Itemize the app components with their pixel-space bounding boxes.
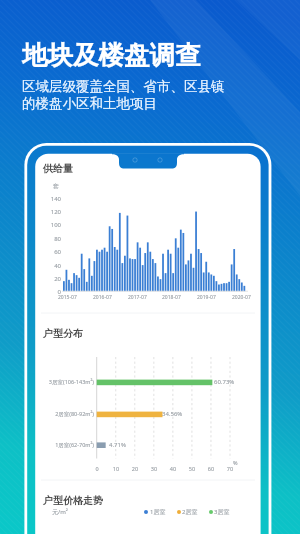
staticText: 140 [43, 195, 61, 534]
staticText: % [233, 459, 238, 466]
staticText: 户型价格走势 [43, 494, 103, 507]
staticText: 地块及楼盘调查 [22, 39, 201, 71]
staticText: 120 [43, 208, 61, 534]
staticText: 套 [53, 182, 59, 190]
staticText: 3居室 [214, 508, 230, 516]
staticText: 20 [126, 465, 144, 534]
staticText: 户型分布 [43, 327, 83, 340]
staticText: 供给量 [43, 162, 73, 175]
button[interactable]: 户型分布图表 [35, 314, 261, 480]
staticText: 2018-07 [162, 294, 181, 301]
staticText: 0 [88, 465, 106, 534]
staticText: 30 [145, 465, 163, 534]
staticText: 10 [107, 465, 125, 534]
staticText: 2居室 [182, 508, 198, 516]
staticText: 2015-07 [58, 294, 77, 301]
staticText: 区域层级覆盖全国、省市、区县镇 [22, 78, 225, 95]
staticText: 70 [221, 465, 239, 534]
staticText: 20 [43, 275, 61, 534]
staticText: 80 [43, 235, 61, 534]
staticText: 元/m² [52, 508, 68, 516]
staticText: 4.71% [109, 441, 126, 449]
staticText: 2016-07 [93, 294, 112, 301]
staticText: 50 [183, 465, 201, 534]
staticText: 60 [43, 248, 61, 534]
staticText: 的楼盘小区和土地项目 [22, 95, 157, 112]
button[interactable]: 供给量图表 [35, 155, 261, 313]
staticText: 0 [43, 288, 61, 534]
button[interactable]: 户型价格走势图表 [35, 481, 261, 534]
staticText: 2020-07 [232, 294, 251, 301]
staticText: 1居室 [150, 508, 166, 516]
staticText: 40 [164, 465, 182, 534]
staticText: 2017-07 [128, 294, 147, 301]
staticText: 60 [202, 465, 220, 534]
staticText: 60.73% [214, 378, 235, 386]
staticText: 1居室(62-70m²) [38, 441, 94, 534]
staticText: 2居室(80-92m²) [38, 410, 94, 534]
staticText: 40 [43, 262, 61, 534]
staticText: 34.56% [162, 410, 183, 418]
staticText: 100 [43, 221, 61, 534]
staticText: 3居室(106-143m²) [38, 378, 94, 534]
staticText: 2019-07 [197, 294, 216, 301]
